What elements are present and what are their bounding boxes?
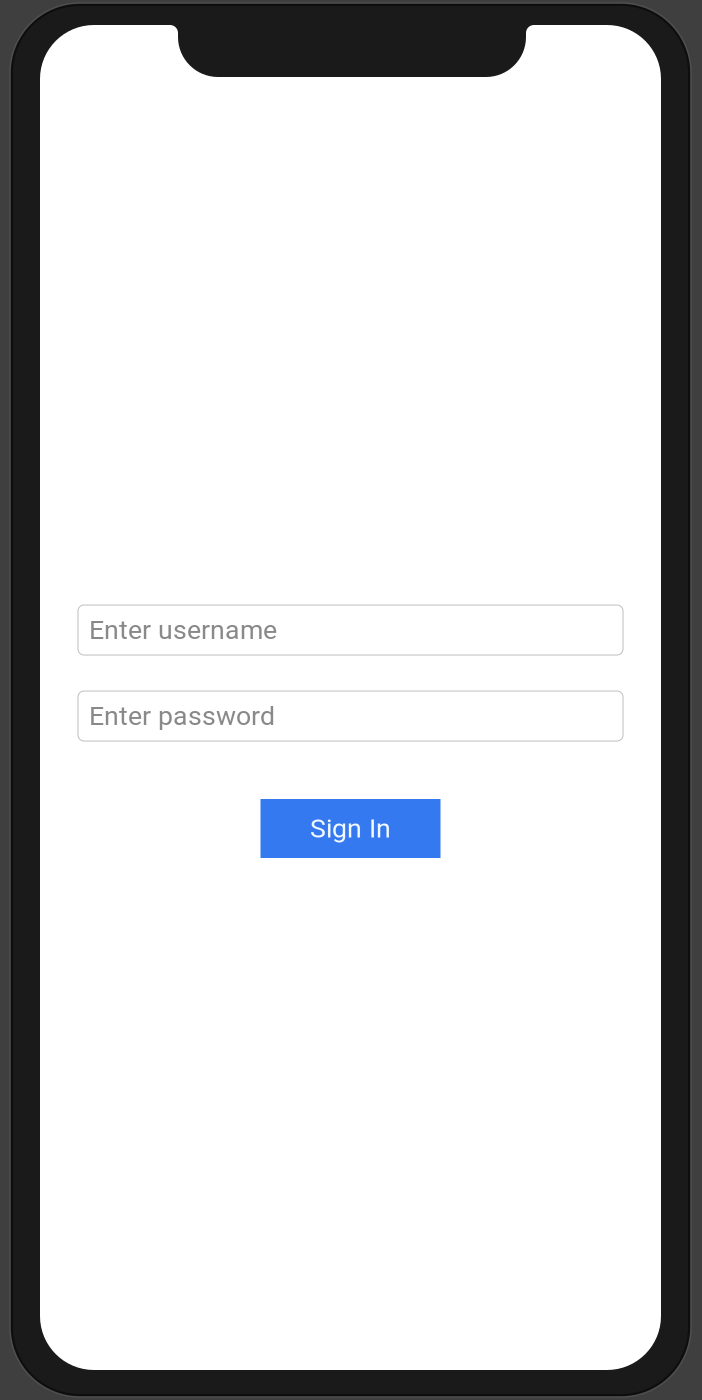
staticText: Enter password xyxy=(89,700,275,732)
button[interactable]: Enter password xyxy=(78,691,623,741)
staticText: Sign In xyxy=(310,813,391,844)
staticText: Enter username xyxy=(89,614,277,646)
button[interactable]: Sign In xyxy=(260,799,440,858)
button[interactable]: Enter username xyxy=(78,605,623,655)
